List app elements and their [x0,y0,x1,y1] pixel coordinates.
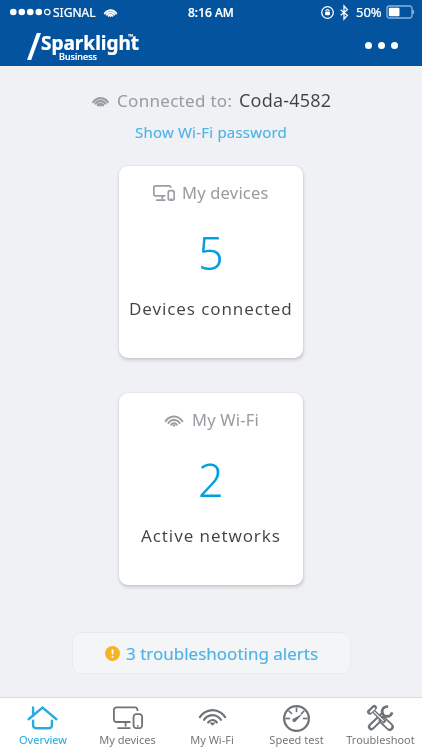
staticText: 2 [198,449,224,510]
staticText: 3 troubleshooting alerts [126,642,319,665]
staticText: Connected to: [117,89,233,112]
staticText: Active networks [141,524,281,547]
button[interactable]: My Wi-Fi [119,393,303,585]
button[interactable]: Troubleshoot [338,698,422,750]
staticText: Sparklight [41,30,140,56]
button[interactable]: 3 troubleshooting alerts [72,632,351,674]
staticText: 8:16 AM [188,4,234,20]
staticText: My Wi-Fi [192,408,260,430]
staticText: My devices [182,181,269,203]
staticText: SIGNAL [53,4,96,20]
button[interactable]: My Wi-Fi [170,698,254,750]
staticText: Coda-4582 [239,88,332,113]
button[interactable]: Show Wi-Fi password [127,120,295,144]
button[interactable]: Speed test [254,698,338,750]
staticText: ™ [128,32,134,42]
button[interactable]: My devices [85,698,170,750]
staticText: My devices [99,732,156,747]
staticText: Speed test [269,732,324,747]
staticText: 5 [198,222,224,283]
button[interactable]: Overview [0,698,85,750]
staticText: Troubleshoot [346,732,415,747]
button[interactable]: My devices [119,166,303,358]
button[interactable]: More options [359,36,404,55]
staticText: Overview [19,732,67,747]
staticText: Devices connected [129,297,293,320]
staticText: 50% [356,3,382,21]
staticText: Business [59,50,97,62]
staticText: My Wi-Fi [190,732,234,747]
